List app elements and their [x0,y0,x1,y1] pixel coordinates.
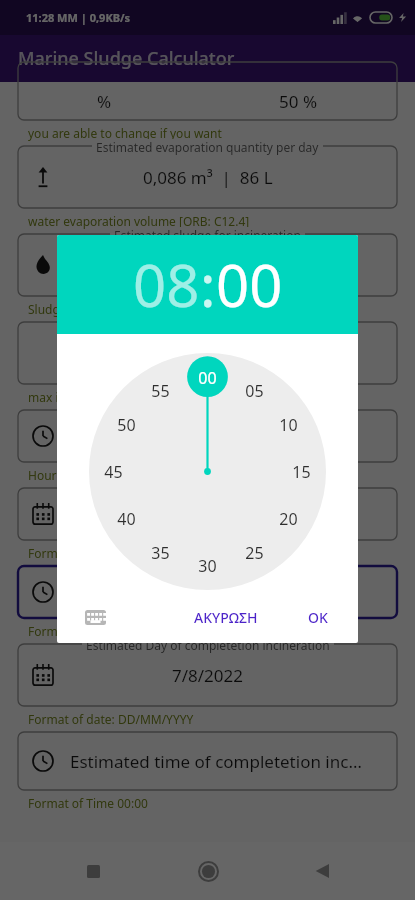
staticText: 7/8/2022 [172,664,243,687]
staticText: 55 [151,380,170,402]
staticText: 30 [198,555,217,577]
staticText: max incinerator capacity [28,389,167,405]
staticText: Hours of incineration [28,467,148,483]
button[interactable]: OK [296,600,340,635]
button[interactable]: Back [300,849,344,893]
button[interactable]: Switch to text input [79,601,111,633]
button[interactable]: 08 [133,245,200,324]
staticText: 0,086 m³ | 86 L [143,166,273,189]
staticText: Estimated Day of completetion incinerati… [86,637,330,653]
button[interactable]: 00 [89,353,326,590]
button[interactable]: Recents [71,849,115,893]
staticText: 45 [104,461,123,483]
staticText: Format of Time 00:00 [28,795,148,811]
staticText: L/h [195,342,221,365]
staticText: Estimated time of completetion inc… [70,750,362,773]
staticText: 11:28 ΜΜ | 0,9KB/s [26,10,131,25]
staticText: 05 [245,380,264,402]
staticText: you are able to change if you want [28,125,222,141]
staticText: 35 [151,542,170,564]
staticText: Format of date: DD/MM/YYYY [28,545,194,561]
staticText: 20 [279,508,298,530]
staticText: : [200,245,216,324]
staticText: Format of Time 00:00 [28,623,148,639]
staticText: Marine Sludge Calculator [18,46,235,71]
staticText: 40 [117,508,136,530]
staticText: 15 [292,461,311,483]
staticText: Estimated evaporation quantity per day [96,139,319,155]
staticText: Estimated sludge for incineration [114,227,301,243]
button[interactable]: 00 [216,245,283,324]
staticText: % 50 % [97,90,318,113]
staticText: OK [308,608,328,627]
staticText: 00 [198,367,217,389]
staticText: 25 [245,542,264,564]
button[interactable]: ΑΚΥΡΩΣΗ [182,600,270,635]
staticText: water evaporation volume [ORB: C12.4] [28,213,250,229]
staticText: 50 [117,414,136,436]
button[interactable]: Home [186,849,230,893]
staticText: Sludge for incineration [ORB: C12.3] [28,301,230,317]
staticText: 10 [279,414,298,436]
staticText: Format of date: DD/MM/YYYY [28,711,194,727]
staticText: ΑΚΥΡΩΣΗ [194,608,258,627]
